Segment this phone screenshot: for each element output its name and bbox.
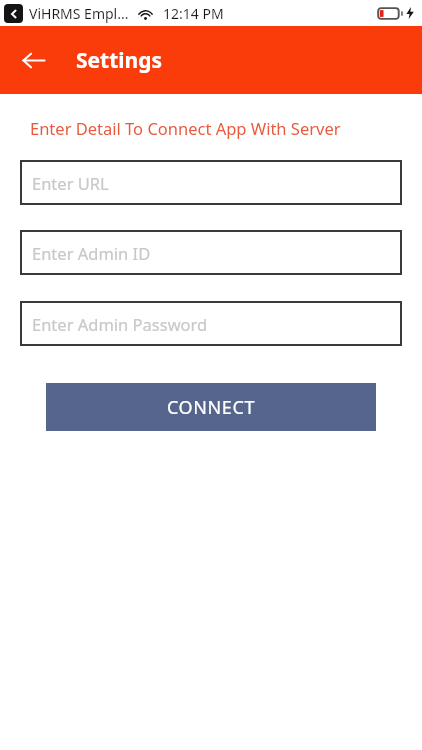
button[interactable]: Back [12, 39, 54, 81]
staticText: Enter Admin ID [32, 242, 151, 264]
staticText: Settings [76, 46, 163, 75]
staticText: Enter URL [32, 172, 109, 194]
staticText: 12:14 PM [163, 4, 224, 23]
staticText: Enter Detail To Connect App With Server [30, 117, 341, 139]
button[interactable]: Enter Admin ID [20, 230, 402, 275]
staticText: CONNECT [167, 395, 256, 420]
button[interactable]: Enter URL [20, 160, 402, 205]
button[interactable]: CONNECT [46, 383, 376, 431]
button[interactable]: Enter Admin Password [20, 301, 402, 346]
staticText: Enter Admin Password [32, 313, 208, 335]
staticText: ViHRMS Empl... [29, 4, 129, 23]
